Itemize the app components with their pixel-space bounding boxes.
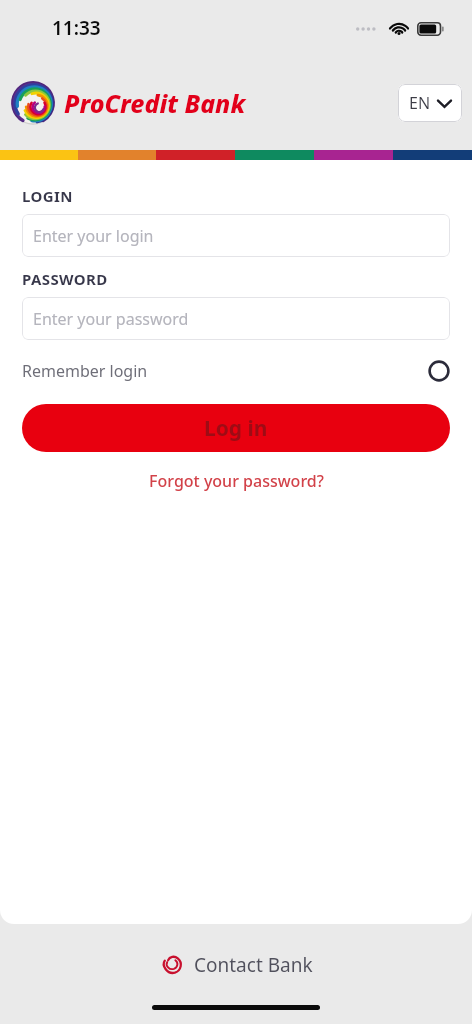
button[interactable]: Enter your login (22, 214, 450, 257)
staticText: Enter your login (33, 225, 154, 247)
button[interactable]: Contact Bank (150, 946, 323, 984)
staticText: Remember login (22, 360, 148, 382)
other: Contact Bank (160, 953, 184, 977)
staticText: Log in (204, 414, 268, 443)
button[interactable]: Enter your password (22, 297, 450, 340)
staticText: PASSWORD (22, 269, 108, 289)
button[interactable]: Log in (22, 404, 450, 452)
staticText: Contact Bank (194, 952, 313, 978)
staticText: EN (409, 92, 431, 114)
staticText: LOGIN (22, 186, 73, 206)
button[interactable]: Remember login (22, 356, 450, 386)
staticText: Enter your password (33, 308, 189, 330)
button[interactable]: EN (398, 84, 462, 122)
staticText: Forgot your password? (149, 470, 324, 492)
button[interactable]: Forgot your password? (22, 470, 450, 492)
staticText: 11:33 (52, 15, 101, 41)
staticText: ProCredit Bank (64, 86, 246, 120)
